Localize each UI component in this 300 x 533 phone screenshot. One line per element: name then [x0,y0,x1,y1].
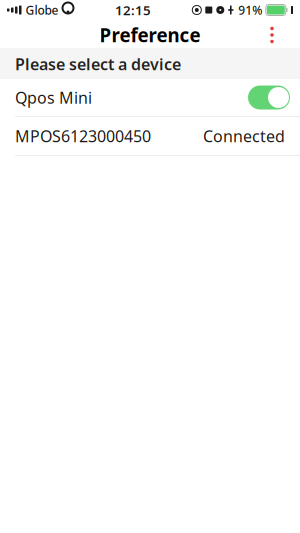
staticText: 12:15 [115,1,151,19]
staticText: Connected [203,125,285,147]
staticText: Preference [99,23,200,47]
staticText: 91% [238,2,262,18]
button[interactable]: MPOS6123000450 [0,117,300,155]
staticText: Qpos Mini [15,87,92,108]
button[interactable]: More options [257,21,287,49]
staticText: Globe [25,2,58,18]
staticText: MPOS6123000450 [15,125,151,147]
button[interactable]: Qpos Mini [0,79,300,116]
staticText: Please select a device [15,53,181,75]
